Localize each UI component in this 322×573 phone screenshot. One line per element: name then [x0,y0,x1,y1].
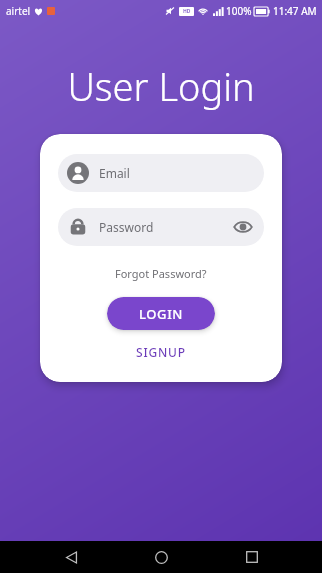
button[interactable]: Show password [231,215,255,239]
staticText: HD [183,8,191,15]
button[interactable]: SIGNUP [130,342,192,362]
staticText: 100% [226,4,252,18]
button[interactable]: LOGIN [107,297,215,330]
button[interactable]: Recent apps [232,541,272,573]
staticText: SIGNUP [136,344,186,360]
button[interactable]: Home [141,541,181,573]
staticText: Password [99,219,231,235]
staticText: Forgot Password? [115,266,207,281]
button[interactable]: Password [58,208,264,246]
staticText: 11:47 AM [273,4,317,18]
staticText: User Login [0,60,322,112]
button[interactable]: Email [58,154,264,192]
staticText: Email [99,165,255,181]
button[interactable]: Forgot Password? [111,264,211,283]
staticText: airtel [6,4,31,18]
staticText: LOGIN [139,305,184,323]
button[interactable]: Back [51,541,91,573]
